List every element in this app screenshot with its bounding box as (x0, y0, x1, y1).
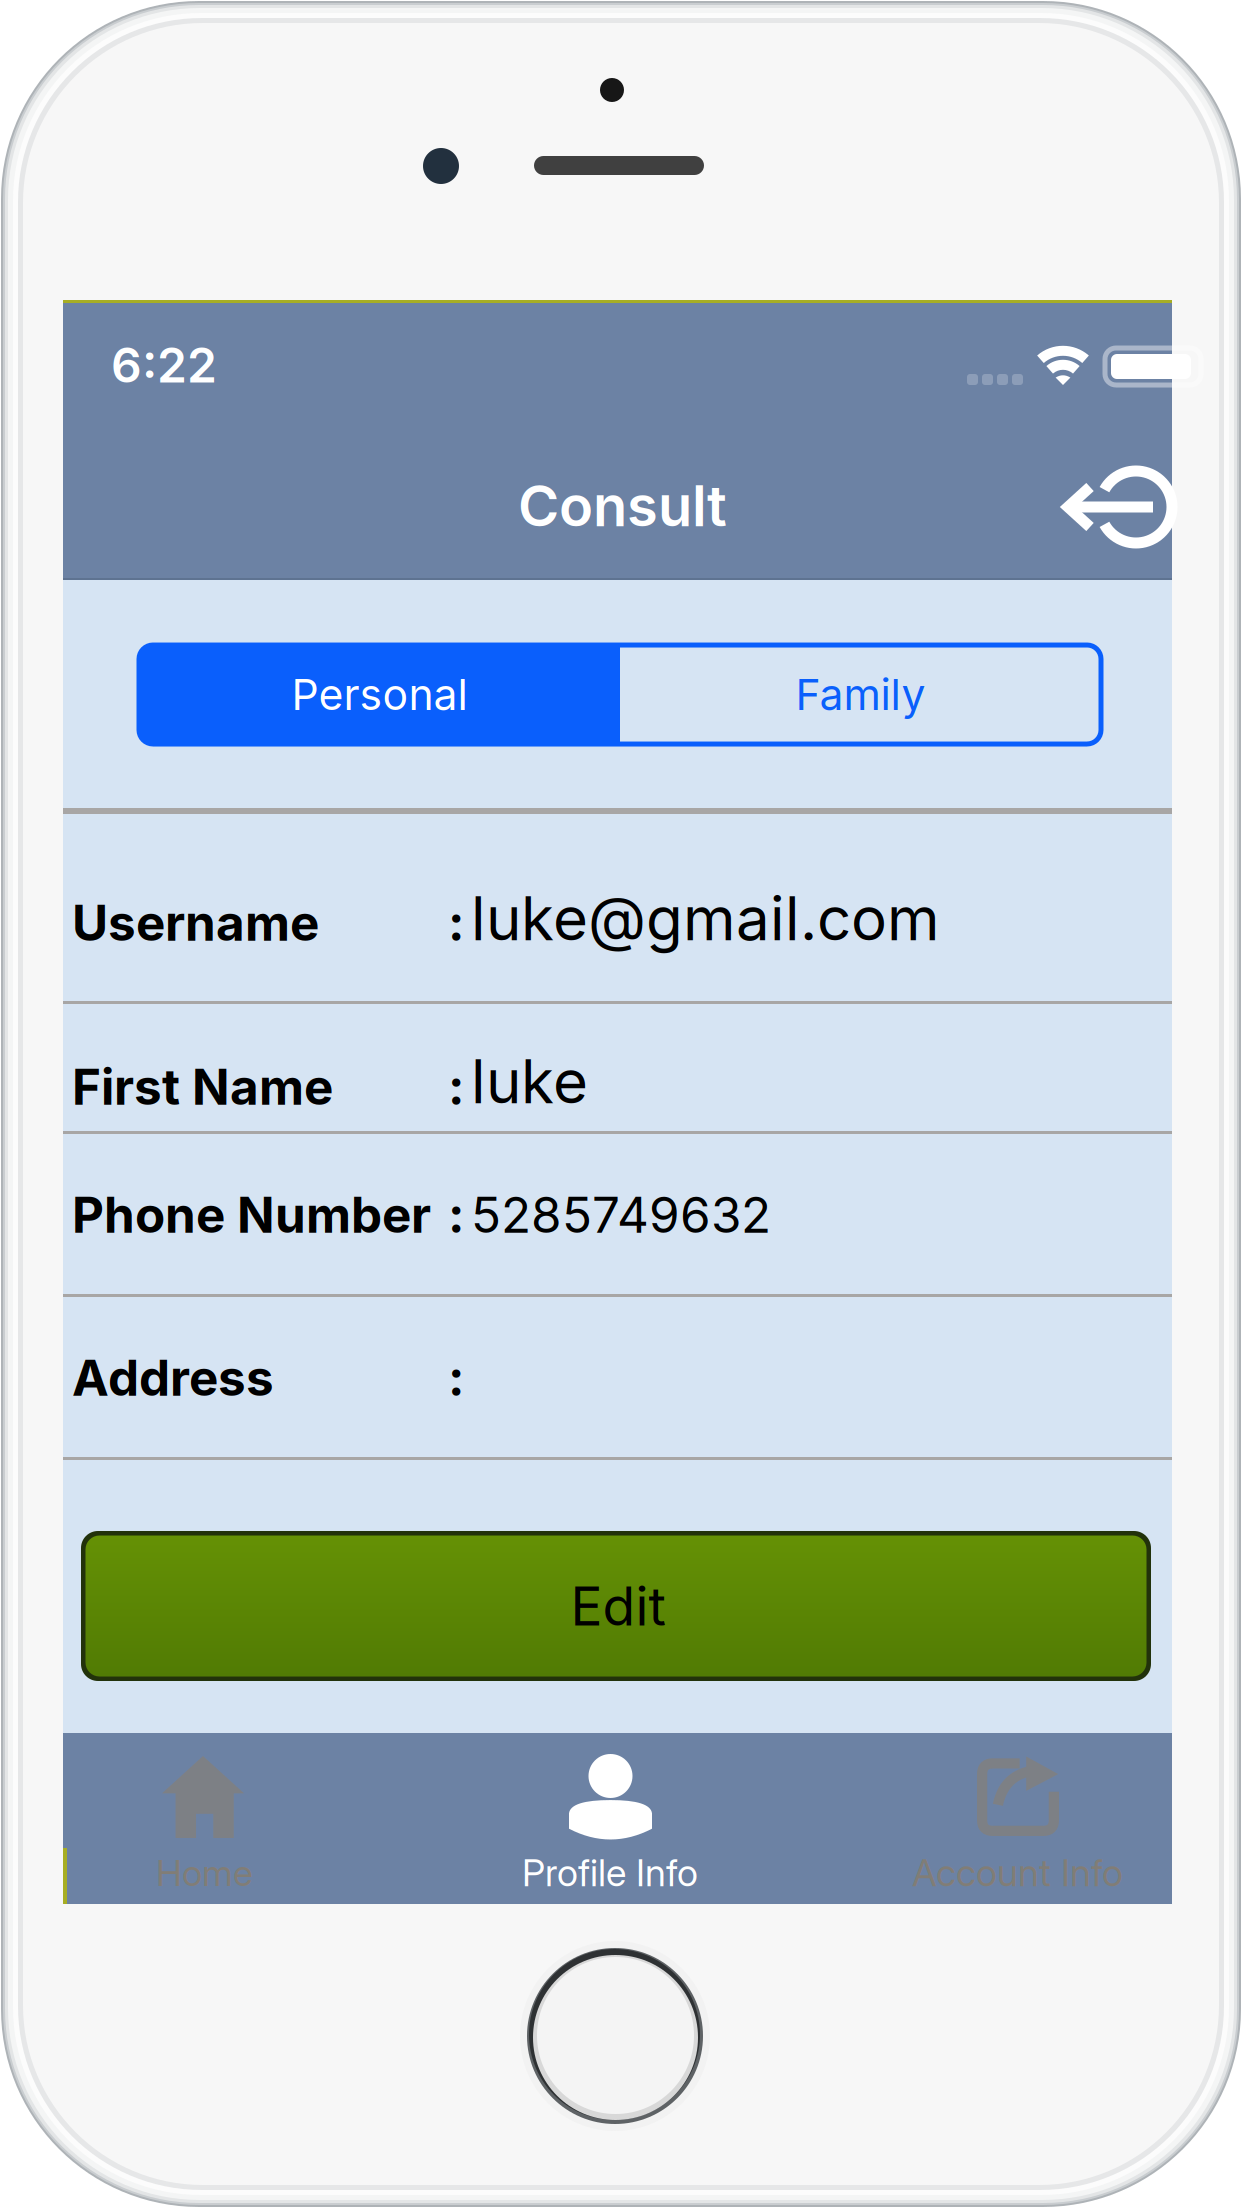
staticText: : (448, 893, 464, 953)
staticText: First Name (72, 1057, 333, 1117)
staticText: Phone Number (72, 1185, 431, 1245)
staticText: Home (156, 1851, 253, 1895)
staticText: 5285749632 (471, 1185, 771, 1245)
staticText: luke@gmail.com (471, 882, 940, 955)
button[interactable]: Account Info (801, 1733, 1171, 1904)
staticText: : (448, 1057, 464, 1117)
staticText: Account Info (912, 1850, 1123, 1895)
staticText: Profile Info (522, 1850, 698, 1895)
staticText: : (448, 1185, 464, 1245)
staticText: Username (72, 893, 319, 953)
staticText: Family (795, 669, 925, 720)
staticText: Personal (291, 669, 467, 720)
button[interactable]: Edit (81, 1531, 1151, 1681)
staticText: Edit (570, 1574, 665, 1638)
staticText: Address (72, 1348, 274, 1408)
staticText: Consult (518, 472, 727, 540)
button[interactable]: Personal (139, 645, 620, 744)
staticText: luke (471, 1045, 588, 1118)
button[interactable]: Family (620, 645, 1101, 744)
button[interactable]: Profile Info (432, 1733, 801, 1904)
button[interactable]: Log out (1043, 432, 1193, 582)
button[interactable]: Home (63, 1733, 432, 1904)
staticText: : (448, 1348, 464, 1408)
staticText: 6:22 (111, 336, 217, 394)
